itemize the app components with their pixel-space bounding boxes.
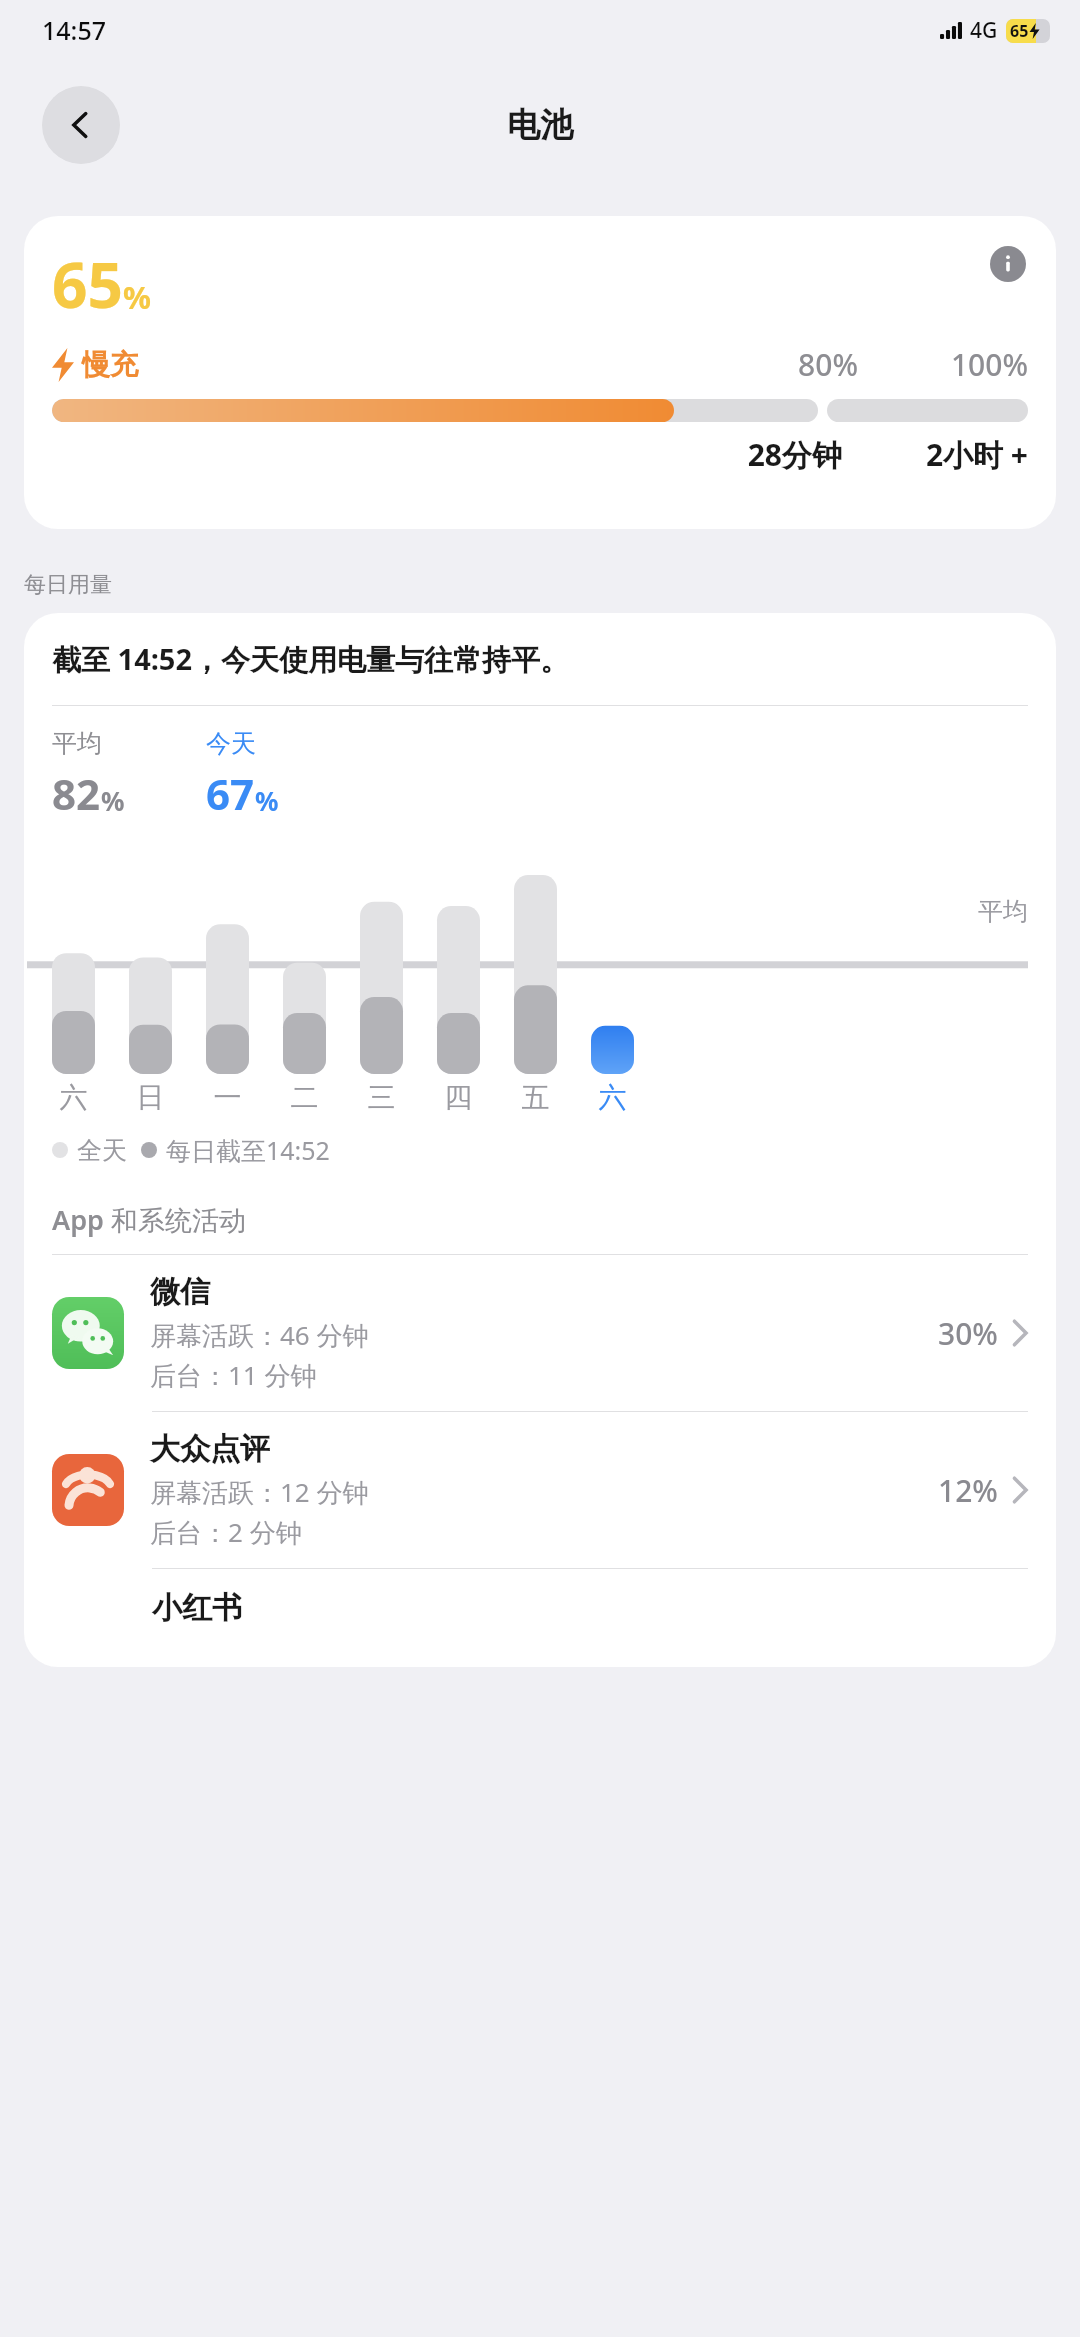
staticText: 二 <box>283 1080 326 1115</box>
staticText: 屏幕活跃：12 分钟 <box>150 1474 369 1510</box>
staticText: 三 <box>360 1080 403 1115</box>
staticText: 截至 14:52，今天使用电量与往常持平。 <box>52 639 570 679</box>
staticText: 65 <box>1010 20 1029 42</box>
staticText: 屏幕活跃：46 分钟 <box>150 1317 369 1353</box>
staticText: 80% <box>710 344 858 385</box>
staticText: 65 <box>52 242 123 326</box>
staticText: % <box>123 276 151 318</box>
staticText: 日 <box>129 1080 172 1115</box>
staticText: 30% <box>938 1313 998 1354</box>
staticText: 六 <box>591 1080 634 1115</box>
staticText: 2小时 + <box>860 434 1028 475</box>
staticText: 67 <box>206 765 255 822</box>
staticText: 每日截至14:52 <box>166 1133 330 1167</box>
staticText: 后台：2 分钟 <box>150 1514 302 1550</box>
staticText: 82 <box>52 765 101 822</box>
button[interactable]: Back <box>42 86 120 164</box>
staticText: 100% <box>878 344 1028 385</box>
staticText: 大众点评 <box>150 1430 270 1468</box>
staticText: 每日用量 <box>24 571 112 599</box>
staticText: % <box>255 783 279 818</box>
staticText: 一 <box>206 1080 249 1115</box>
staticText: 平均 <box>978 896 1028 927</box>
button[interactable]: 大众点评 <box>24 1412 1056 1568</box>
staticText: 12% <box>938 1470 998 1511</box>
staticText: 后台：11 分钟 <box>150 1357 317 1393</box>
staticText: 平均 <box>52 728 102 759</box>
staticText: 全天 <box>77 1135 127 1166</box>
staticText: 电池 <box>507 104 573 146</box>
staticText: 五 <box>514 1080 557 1115</box>
button[interactable]: 65 <box>24 216 1056 529</box>
staticText: 14:57 <box>42 13 107 47</box>
button[interactable]: Info <box>988 244 1028 284</box>
staticText: 28分钟 <box>662 434 842 475</box>
staticText: % <box>101 783 125 818</box>
staticText: 4G <box>970 16 998 45</box>
staticText: 微信 <box>150 1273 210 1311</box>
button[interactable]: 微信 <box>24 1255 1056 1411</box>
staticText: App 和系统活动 <box>52 1201 246 1238</box>
staticText: 慢充 <box>82 347 138 382</box>
staticText: 今天 <box>206 728 256 759</box>
staticText: 六 <box>52 1080 95 1115</box>
staticText: 四 <box>437 1080 480 1115</box>
staticText: 小红书 <box>152 1589 242 1627</box>
